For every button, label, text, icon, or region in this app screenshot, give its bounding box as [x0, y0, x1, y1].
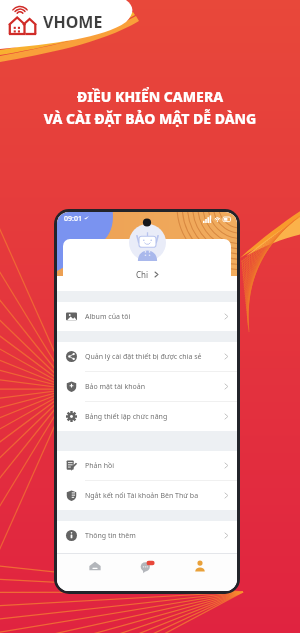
button[interactable]: Quản lý cài đặt thiết bị được chia sẻ [57, 342, 237, 371]
staticText: Bảo mật tài khoản [85, 382, 145, 392]
button[interactable]: Bảo mật tài khoản [57, 372, 237, 401]
staticText: Album của tôi [85, 312, 131, 322]
button[interactable]: Profile [185, 551, 215, 581]
staticText: ĐIỀU KHIỂN CAMERA [0, 87, 300, 106]
button[interactable]: Phản hồi [57, 451, 237, 480]
button[interactable]: Bảng thiết lập chức năng [57, 402, 237, 431]
staticText: VHOME [43, 11, 103, 33]
button[interactable]: Messages [132, 551, 162, 581]
button[interactable]: Thông tin thêm [57, 521, 237, 550]
staticText: Quản lý cài đặt thiết bị được chia sẻ [85, 352, 202, 362]
button[interactable]: Home [80, 551, 110, 581]
staticText: VÀ CÀI ĐẶT BẢO MẬT DỄ DÀNG [0, 109, 300, 128]
button[interactable]: Ngắt kết nối Tài khoản Bên Thứ ba [57, 481, 237, 510]
staticText: Chi [136, 269, 149, 280]
staticText: Thông tin thêm [85, 531, 136, 541]
button[interactable]: Chi [63, 239, 231, 291]
staticText: Phản hồi [85, 461, 115, 471]
button[interactable]: Album của tôi [57, 302, 237, 331]
staticText: 09:01 [64, 214, 82, 224]
staticText: Ngắt kết nối Tài khoản Bên Thứ ba [85, 491, 199, 501]
staticText: Bảng thiết lập chức năng [85, 412, 168, 422]
